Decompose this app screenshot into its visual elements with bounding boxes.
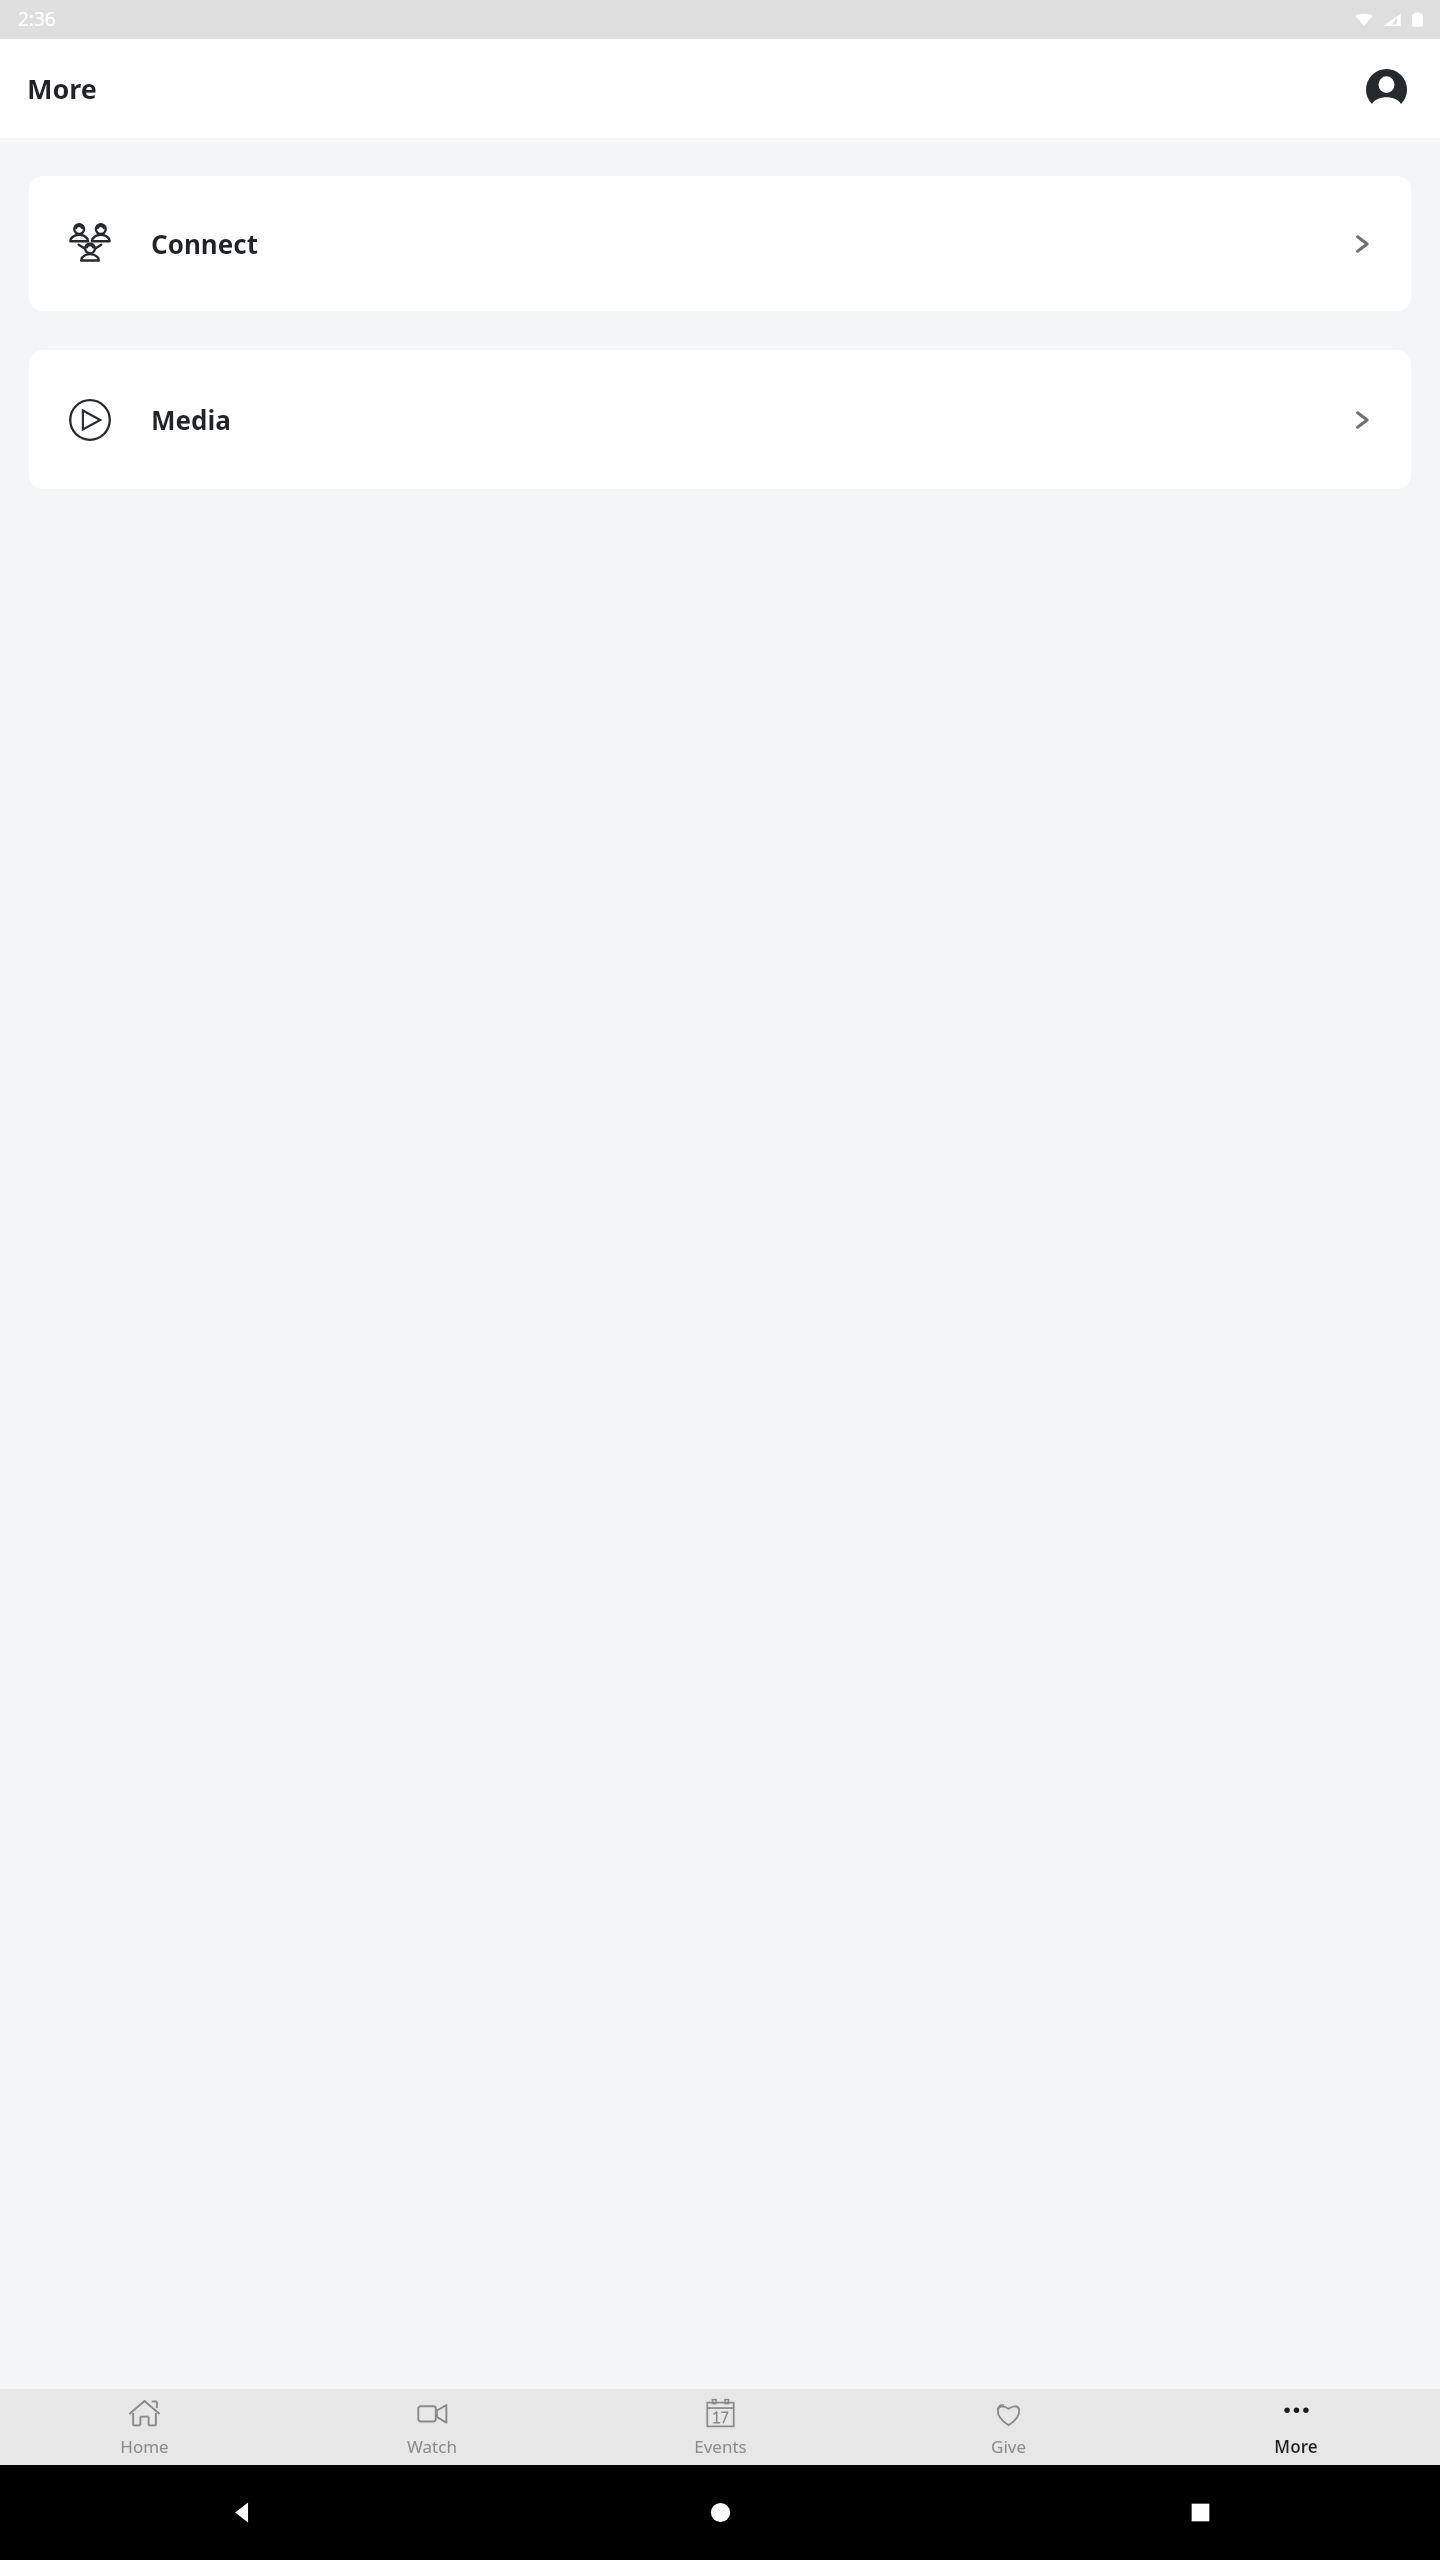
button[interactable]: Media	[29, 350, 1411, 489]
button[interactable]: Back	[0, 2465, 480, 2560]
staticText: Connect	[151, 226, 258, 261]
button[interactable]: Connect	[29, 176, 1411, 311]
button[interactable]: Events	[576, 2389, 864, 2465]
button[interactable]: More	[1152, 2389, 1440, 2465]
staticText: Watch	[407, 2435, 457, 2458]
button[interactable]: Home	[480, 2465, 960, 2560]
button[interactable]: Give	[864, 2389, 1152, 2465]
staticText: Events	[694, 2435, 747, 2458]
staticText: 2:36	[18, 6, 56, 32]
staticText: Media	[151, 402, 231, 437]
staticText: Give	[991, 2435, 1026, 2458]
staticText: More	[1274, 2435, 1318, 2458]
button[interactable]: Home	[0, 2389, 288, 2465]
staticText: More	[27, 70, 97, 107]
button[interactable]: Watch	[288, 2389, 576, 2465]
staticText: Home	[120, 2435, 169, 2458]
button[interactable]: Recent apps	[960, 2465, 1440, 2560]
button[interactable]: Profile	[1361, 64, 1411, 114]
